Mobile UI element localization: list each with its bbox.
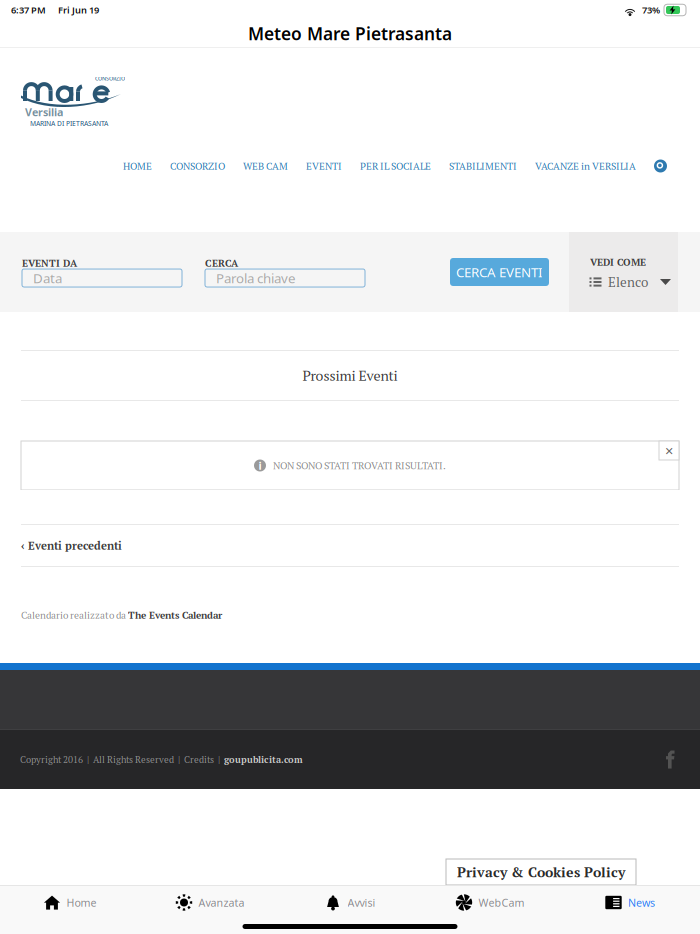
staticText: Calendario realizzato da <box>21 608 128 622</box>
button[interactable]: WebCam <box>420 886 560 919</box>
staticText: Prossimi Eventi <box>302 366 397 385</box>
staticText: CONSORZIO <box>170 159 225 173</box>
staticText: Parola chiave <box>216 269 296 287</box>
button[interactable]: Avvisi <box>280 886 420 919</box>
staticText: CONSORZIO <box>95 75 125 82</box>
button[interactable]: Data <box>22 269 182 287</box>
button[interactable]: STABILIMENTI <box>440 145 526 187</box>
staticText: WEB CAM <box>243 159 288 173</box>
button[interactable]: CONSORZIO <box>161 145 234 187</box>
staticText: MARINA DI PIETRASANTA <box>30 119 108 128</box>
staticText: i <box>258 458 261 473</box>
button[interactable]: PER IL SOCIALE <box>351 145 440 187</box>
staticText: NON SONO STATI TROVATI RISULTATI. <box>273 459 446 472</box>
staticText: Data <box>33 269 62 287</box>
staticText: Versilia <box>25 105 63 119</box>
button[interactable]: Chiudi <box>659 441 679 460</box>
staticText: Elenco <box>608 273 648 291</box>
staticText: Copyright 2016 | All Rights Reserved | C… <box>20 753 224 766</box>
staticText: Meteo Mare Pietrasanta <box>248 22 452 45</box>
button[interactable]: Home <box>0 886 140 919</box>
button[interactable]: Parola chiave <box>205 269 365 287</box>
button[interactable]: Privacy & Cookies Policy <box>446 859 636 885</box>
staticText: × <box>665 441 673 460</box>
staticText: HOME <box>123 159 152 173</box>
staticText: VACANZE in VERSILIA <box>535 159 636 173</box>
button[interactable]: ‹ Eventi precedenti <box>0 525 700 566</box>
staticText: VEDI COME <box>590 255 646 269</box>
button[interactable]: EVENTI <box>297 145 351 187</box>
staticText: CERCA EVENTI <box>456 263 543 281</box>
button[interactable]: Facebook <box>651 750 687 768</box>
staticText: STABILIMENTI <box>449 159 517 173</box>
staticText: News <box>628 895 655 910</box>
staticText: EVENTI DA <box>22 256 77 270</box>
button[interactable]: HOME <box>114 145 161 187</box>
staticText: The Events Calendar <box>128 608 222 622</box>
staticText: 6:37 PM <box>11 4 46 16</box>
staticText: 73% <box>642 4 660 16</box>
staticText: WebCam <box>478 895 524 910</box>
button[interactable]: CERCA EVENTI <box>450 258 549 286</box>
staticText: Avanzata <box>198 895 244 910</box>
staticText: EVENTI <box>306 159 342 173</box>
staticText: PER IL SOCIALE <box>360 159 431 173</box>
staticText: Fri Jun 19 <box>58 4 99 16</box>
button[interactable]: News <box>560 886 700 919</box>
staticText: goupublicita.com <box>224 753 303 766</box>
staticText: Avvisi <box>347 895 375 910</box>
staticText: ‹ Eventi precedenti <box>21 538 122 553</box>
button[interactable]: VACANZE in VERSILIA <box>526 145 645 187</box>
staticText: Privacy & Cookies Policy <box>457 863 625 881</box>
button[interactable]: WEB CAM <box>234 145 297 187</box>
staticText: Home <box>66 895 96 910</box>
button[interactable]: Elenco <box>590 272 670 292</box>
button[interactable]: Avanzata <box>140 886 280 919</box>
staticText: CERCA <box>205 256 238 270</box>
button[interactable]: Cerca <box>645 150 676 181</box>
